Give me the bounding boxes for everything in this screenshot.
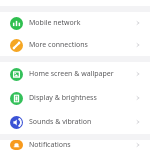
button[interactable]: Home screen & wallpaper — [0, 62, 150, 86]
button[interactable]: More connections — [0, 34, 150, 56]
staticText: Display & brightness — [29, 93, 135, 103]
staticText: Sounds & vibration — [29, 117, 135, 127]
staticText: Notifications — [29, 140, 135, 150]
button[interactable]: Display & brightness — [0, 86, 150, 110]
staticText: More connections — [29, 40, 135, 50]
staticText: Mobile network — [29, 18, 135, 28]
button[interactable]: Sounds & vibration — [0, 110, 150, 134]
staticText: Home screen & wallpaper — [29, 69, 135, 79]
button[interactable]: Mobile network — [0, 12, 150, 34]
button[interactable]: Notifications — [0, 140, 150, 150]
